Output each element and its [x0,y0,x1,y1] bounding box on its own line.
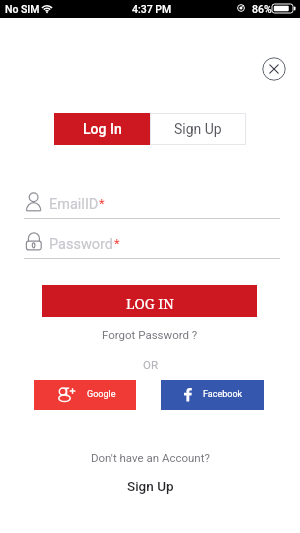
staticText: Password [49,236,114,253]
button[interactable]: Google [34,380,136,410]
staticText: Sign Up [127,478,174,494]
staticText: Forgot Password ? [102,328,198,341]
staticText: * [114,236,120,251]
staticText: * [99,196,105,211]
button[interactable]: Log In [54,113,150,145]
staticText: 86% [252,3,272,15]
button[interactable]: Sign Up [119,476,182,496]
button[interactable]: Forgot Password ? [94,326,206,343]
staticText: Facebook [203,389,243,400]
staticText: Google [87,389,116,400]
button[interactable]: Close [262,57,286,81]
staticText: OR [143,358,158,371]
staticText: Don't have an Account? [91,451,210,464]
staticText: Log In [83,121,122,137]
staticText: EmailID [49,196,99,213]
staticText: No SIM [5,3,40,15]
button[interactable]: Sign Up [150,113,246,145]
button[interactable]: LOG IN [42,285,257,317]
button[interactable]: Facebook [161,380,264,410]
staticText: LOG IN [126,294,174,313]
staticText: 4:37 PM [132,3,172,15]
staticText: Sign Up [174,121,222,137]
